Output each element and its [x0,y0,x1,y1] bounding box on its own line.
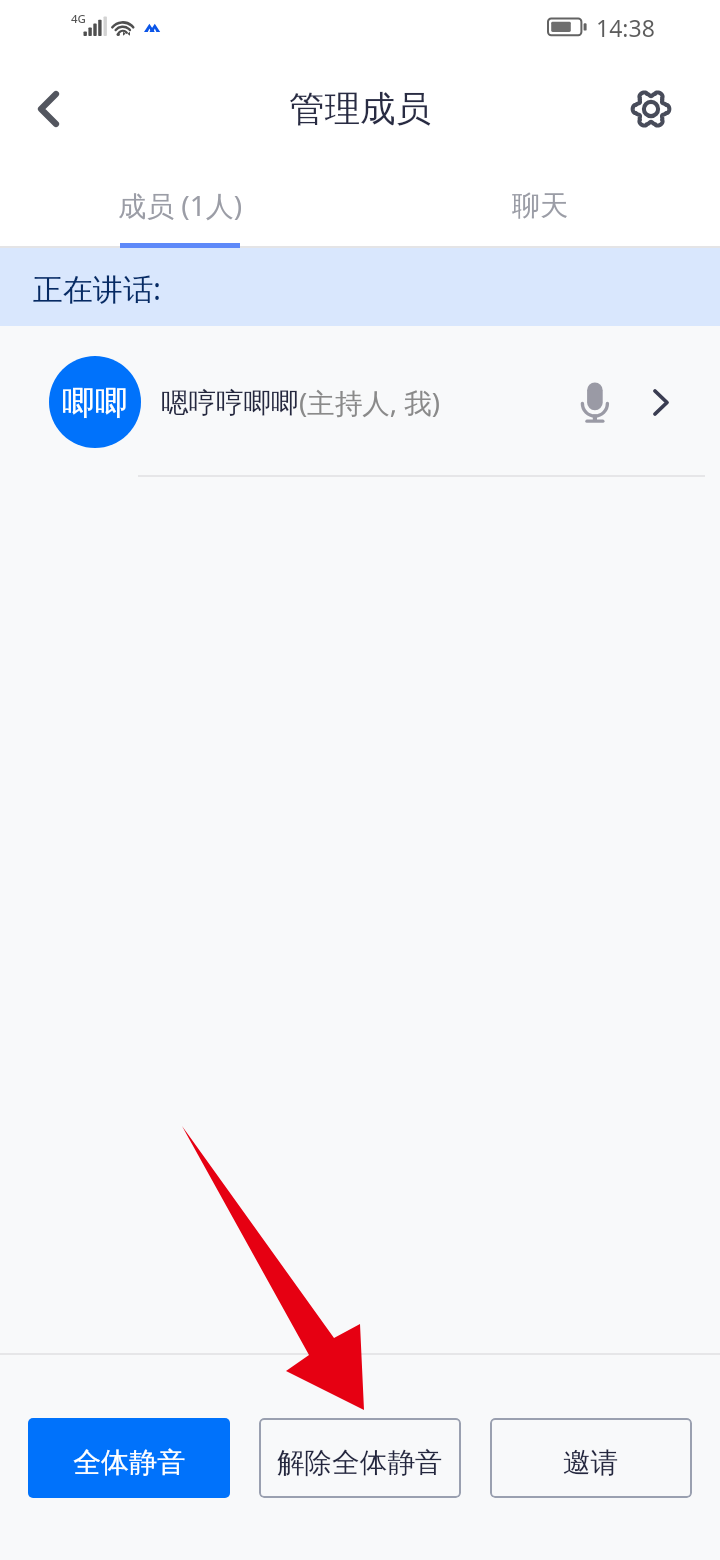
button[interactable]: Back [0,62,96,156]
staticText: 嗯哼哼唧唧 [161,386,299,421]
staticText: 4G [71,11,86,27]
staticText: 唧唧 [62,382,128,424]
staticText: 管理成员 [289,87,431,132]
staticText: (主持人, 我) [299,384,441,422]
staticText: 解除全体静音 [277,1445,443,1480]
button[interactable]: 聊天 [360,156,720,248]
staticText: 正在讲话: [33,268,162,309]
staticText: 全体静音 [73,1445,185,1480]
staticText: 14:38 [596,12,655,43]
staticText: 聊天 [512,188,568,223]
button[interactable]: 邀请 [490,1418,692,1498]
button[interactable]: 成员 (1人) [0,156,360,248]
staticText: 邀请 [563,1445,619,1480]
button[interactable]: Settings [604,62,698,156]
button[interactable]: 解除全体静音 [259,1418,461,1498]
button[interactable]: 全体静音 [28,1418,230,1498]
staticText: 成员 (1人) [118,186,243,224]
button[interactable]: 唧唧 [0,326,720,478]
